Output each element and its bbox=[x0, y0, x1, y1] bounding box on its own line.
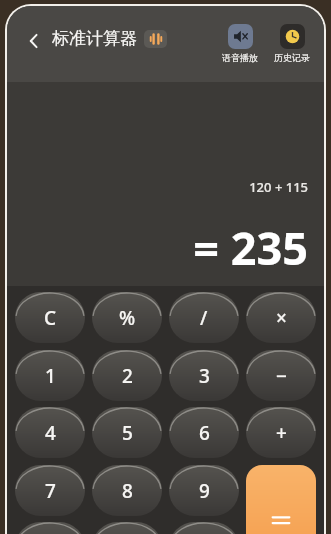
staticText: 标准计算器 bbox=[52, 28, 137, 49]
button[interactable]: History bbox=[272, 24, 312, 63]
button[interactable]: / bbox=[169, 292, 239, 343]
staticText: 3 bbox=[199, 363, 210, 389]
staticText: 120 + 115 bbox=[249, 178, 308, 196]
staticText: 1 bbox=[45, 363, 56, 389]
staticText: % bbox=[119, 305, 136, 331]
staticText: 5 bbox=[122, 420, 133, 446]
staticText: 语音播放 bbox=[222, 52, 258, 63]
button[interactable]: 2 bbox=[92, 350, 162, 401]
button[interactable]: 5 bbox=[92, 407, 162, 458]
staticText: 7 bbox=[45, 478, 56, 504]
staticText: 2 bbox=[122, 363, 133, 389]
button[interactable]: + bbox=[246, 407, 316, 458]
button[interactable]: Voice playback bbox=[220, 24, 260, 63]
button[interactable]: 0 bbox=[92, 522, 162, 534]
staticText: / bbox=[200, 305, 208, 331]
staticText: − bbox=[276, 363, 287, 389]
button[interactable]: C bbox=[15, 292, 85, 343]
staticText: × bbox=[276, 305, 287, 331]
button[interactable]: 1 bbox=[15, 350, 85, 401]
button[interactable]: 7 bbox=[15, 465, 85, 516]
button[interactable]: % bbox=[92, 292, 162, 343]
button[interactable]: Switch mode bbox=[144, 30, 167, 48]
staticText: 8 bbox=[122, 478, 133, 504]
button[interactable]: 8 bbox=[92, 465, 162, 516]
staticText: C bbox=[44, 305, 57, 331]
button[interactable]: × bbox=[246, 292, 316, 343]
button[interactable]: 6 bbox=[169, 407, 239, 458]
staticText: 6 bbox=[199, 420, 210, 446]
staticText: 4 bbox=[45, 420, 56, 446]
button[interactable]: ⌫ bbox=[169, 522, 239, 534]
button[interactable]: Back bbox=[21, 28, 47, 54]
button[interactable]: 9 bbox=[169, 465, 239, 516]
staticText: 9 bbox=[199, 478, 210, 504]
button[interactable]: . bbox=[15, 522, 85, 534]
staticText: = 235 bbox=[193, 217, 308, 278]
button[interactable]: 4 bbox=[15, 407, 85, 458]
button[interactable] bbox=[246, 465, 316, 534]
button[interactable]: − bbox=[246, 350, 316, 401]
staticText: + bbox=[276, 420, 287, 446]
staticText: 历史记录 bbox=[274, 52, 310, 63]
button[interactable]: 3 bbox=[169, 350, 239, 401]
